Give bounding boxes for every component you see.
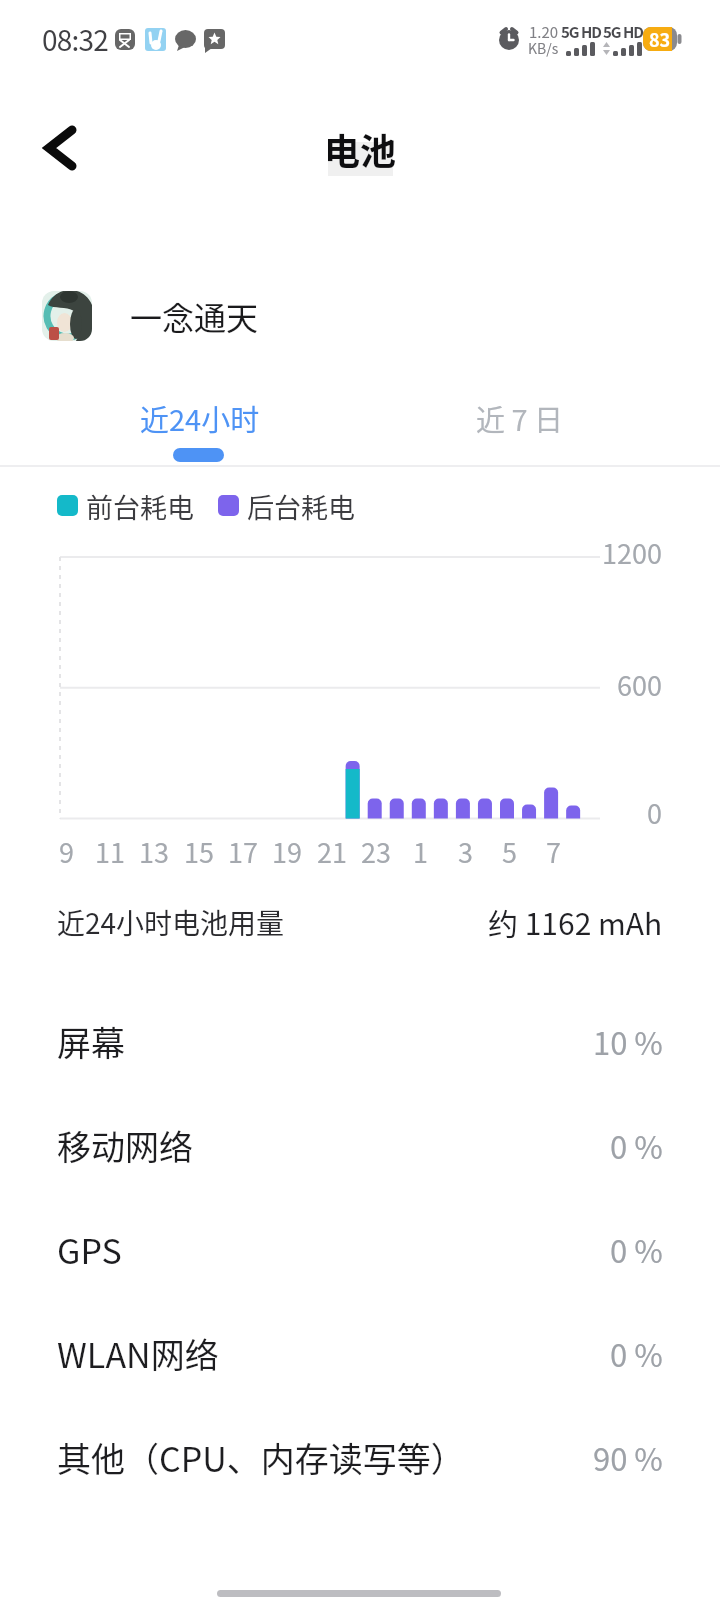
staticText: KB/s [528,38,559,58]
staticText: 1 [413,832,428,871]
staticText: 前台耗电 [86,487,194,526]
staticText: 15 [184,832,214,871]
button[interactable]: 近24小时 [80,390,320,446]
staticText: 近24小时 [140,397,260,439]
staticText: 5 [502,832,517,871]
staticText: 11 [95,832,125,871]
staticText: 0 [647,793,662,832]
staticText: 近24小时电池用量 [57,902,285,943]
button[interactable] [36,120,92,176]
staticText: 23 [361,832,391,871]
staticText: 3 [458,832,473,871]
staticText: 17 [228,832,258,871]
staticText: GPS [57,1225,122,1274]
staticText: 移动网络 [57,1121,193,1170]
staticText: 83 [649,26,671,52]
staticText: 5G HD [603,21,644,43]
button[interactable]: 屏幕 [0,989,720,1093]
staticText: 0 % [610,1123,663,1168]
button[interactable]: 其他（CPU、内存读写等） [0,1405,720,1509]
button[interactable] [0,276,720,356]
staticText: 10 % [593,1019,663,1064]
staticText: 近 7 日 [476,397,564,439]
staticText: 0 % [610,1227,663,1272]
staticText: 13 [139,832,169,871]
staticText: WLAN网络 [57,1329,219,1378]
staticText: 其他（CPU、内存读写等） [57,1433,465,1482]
staticText: 1.20 [529,21,559,43]
staticText: 19 [272,832,302,871]
staticText: 90 % [593,1435,663,1480]
staticText: 0 % [610,1331,663,1376]
staticText: 电池 [324,123,397,175]
button[interactable]: GPS [0,1197,720,1301]
staticText: 一念通天 [130,293,259,339]
staticText: 08:32 [42,19,108,60]
staticText: 7 [546,832,561,871]
staticText: 9 [59,832,74,871]
button[interactable]: WLAN网络 [0,1301,720,1405]
staticText: 1200 [602,533,662,572]
staticText: 后台耗电 [247,487,355,526]
staticText: 21 [317,832,347,871]
staticText: 600 [617,665,662,704]
staticText: 屏幕 [57,1017,125,1066]
staticText: 5G HD [561,21,602,43]
staticText: 约 1162 mAh [488,900,663,943]
button[interactable]: 近 7 日 [400,390,640,446]
button[interactable]: 移动网络 [0,1093,720,1197]
